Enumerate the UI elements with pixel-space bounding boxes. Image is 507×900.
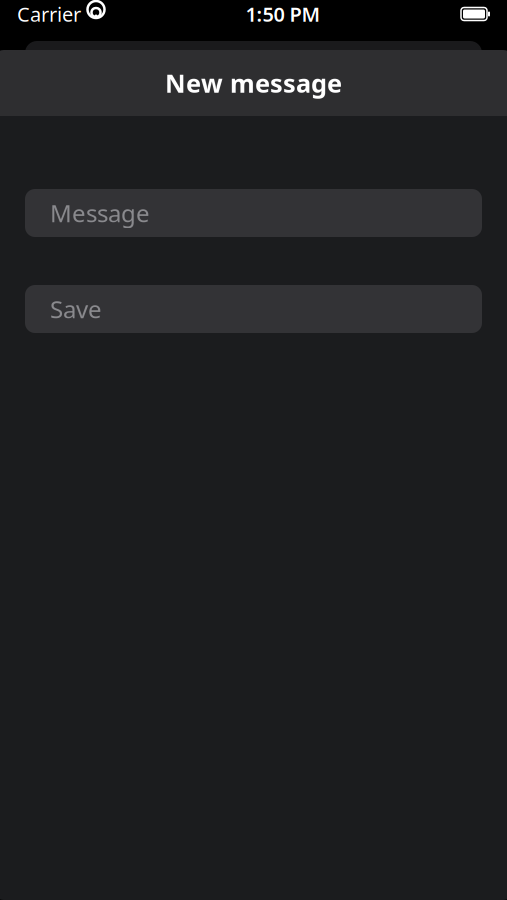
staticText: Carrier (17, 1, 81, 27)
staticText: Message (50, 197, 150, 229)
button[interactable]: Save (25, 285, 482, 333)
staticText: New message (165, 66, 342, 100)
button[interactable]: Message (25, 189, 482, 237)
staticText: 1:50 PM (245, 1, 320, 27)
staticText: Save (50, 293, 102, 325)
